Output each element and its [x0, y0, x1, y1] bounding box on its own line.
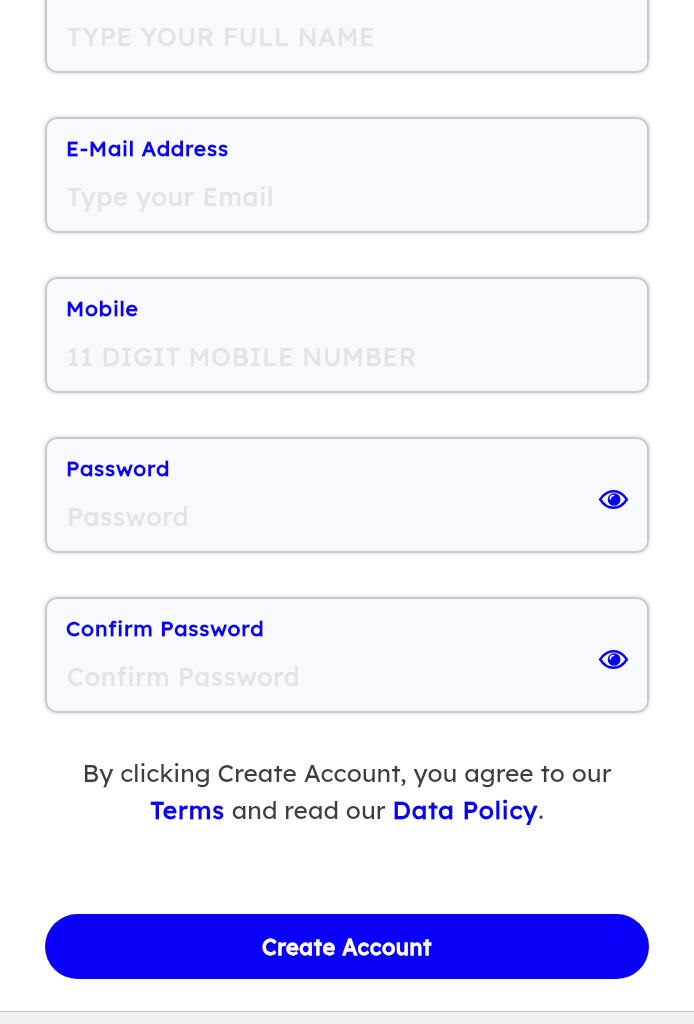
staticText: Password — [67, 501, 190, 532]
staticText: E-Mail Address — [66, 135, 229, 161]
staticText: Confirm Password — [67, 661, 301, 692]
button[interactable]: TYPE YOUR FULL NAME — [45, 0, 649, 73]
button[interactable]: Confirm Password — [45, 597, 649, 713]
staticText: Type your Email — [67, 181, 275, 212]
staticText: Mobile — [66, 295, 139, 321]
button[interactable]: Create Account — [45, 914, 649, 979]
button[interactable]: Password — [45, 437, 649, 553]
button[interactable]: E-Mail Address — [45, 117, 649, 233]
staticText: By clicking Create Account, you agree to… — [45, 757, 649, 825]
button[interactable]: Show password — [588, 474, 638, 524]
staticText: Password — [66, 455, 171, 481]
staticText: Confirm Password — [66, 615, 265, 641]
button[interactable]: Show password — [588, 634, 638, 684]
staticText: TYPE YOUR FULL NAME — [67, 21, 376, 52]
staticText: 11 DIGIT MOBILE NUMBER — [67, 341, 417, 372]
staticText: Create Account — [262, 933, 432, 960]
button[interactable]: Mobile — [45, 277, 649, 393]
